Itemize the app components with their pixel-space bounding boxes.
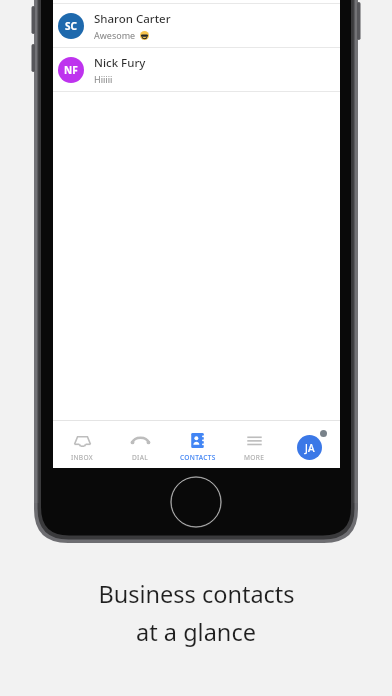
- staticText: Business contacts: [98, 578, 295, 610]
- button[interactable]: SC: [53, 4, 340, 47]
- staticText: at a glance: [136, 616, 256, 648]
- staticText: CONTACTS: [180, 453, 216, 462]
- staticText: NF: [64, 63, 78, 77]
- staticText: JA: [305, 441, 315, 455]
- button[interactable]: INBOX: [53, 428, 111, 462]
- staticText: DIAL: [132, 453, 148, 462]
- staticText: Sharon Carter: [94, 11, 171, 27]
- staticText: Awesome: [94, 29, 136, 41]
- staticText: SC: [65, 19, 77, 33]
- button[interactable]: CONTACTS: [169, 428, 226, 462]
- button[interactable]: NF: [53, 48, 340, 91]
- staticText: Hiiiii: [94, 73, 113, 85]
- staticText: MORE: [244, 453, 265, 462]
- staticText: Nick Fury: [94, 55, 146, 71]
- button[interactable]: MORE: [226, 428, 283, 462]
- button[interactable]: DIAL: [111, 428, 169, 462]
- button[interactable]: Account: [283, 430, 340, 460]
- staticText: INBOX: [71, 453, 93, 462]
